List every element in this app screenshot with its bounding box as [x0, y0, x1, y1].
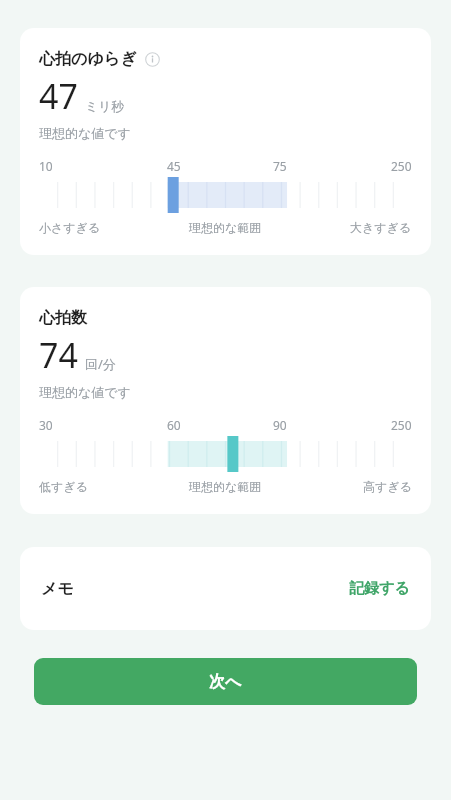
staticText: 75: [273, 158, 287, 174]
staticText: 心拍のゆらぎ: [39, 49, 137, 69]
staticText: 45: [167, 158, 181, 174]
staticText: 大きすぎる: [350, 220, 412, 235]
button[interactable]: 心拍のゆらぎ: [20, 28, 431, 255]
staticText: 250: [391, 158, 412, 174]
staticText: 90: [273, 417, 287, 433]
button[interactable]: 次へ: [34, 658, 417, 705]
staticText: 小さすぎる: [39, 220, 101, 235]
staticText: ミリ秒: [85, 98, 125, 114]
staticText: 回/分: [85, 355, 116, 373]
button[interactable]: 詳細情報: [145, 52, 160, 67]
staticText: 30: [39, 417, 53, 433]
staticText: 60: [167, 417, 181, 433]
staticText: 74: [39, 332, 78, 378]
staticText: 理想的な範囲: [189, 220, 262, 235]
staticText: 250: [391, 417, 412, 433]
staticText: 47: [39, 73, 78, 119]
staticText: 理想的な値です: [39, 384, 131, 400]
staticText: 高すぎる: [363, 479, 412, 494]
staticText: 心拍数: [39, 308, 87, 328]
button[interactable]: 心拍数: [20, 287, 431, 514]
staticText: 記録する: [349, 579, 410, 598]
button[interactable]: メモ: [20, 547, 431, 630]
staticText: 10: [39, 158, 53, 174]
staticText: メモ: [41, 579, 74, 599]
staticText: 理想的な範囲: [189, 479, 262, 494]
staticText: 低すぎる: [39, 479, 88, 494]
staticText: 次へ: [209, 672, 242, 692]
staticText: 理想的な値です: [39, 125, 131, 141]
